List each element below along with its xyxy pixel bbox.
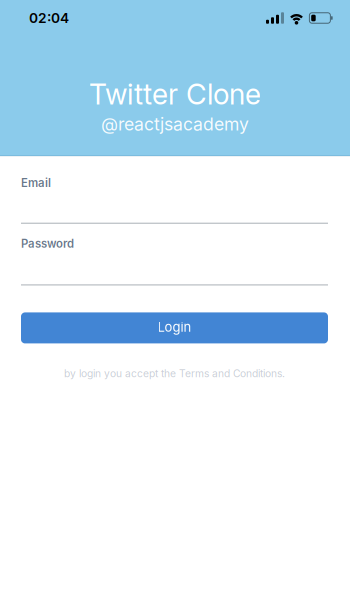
staticText: by login you accept the Terms and Condit… bbox=[64, 367, 285, 380]
staticText: Twitter Clone bbox=[89, 77, 261, 111]
staticText: 02:04 bbox=[29, 10, 69, 26]
staticText: Password bbox=[21, 237, 74, 250]
button[interactable]: Login bbox=[21, 312, 328, 343]
staticText: Email bbox=[21, 176, 51, 190]
staticText: @reactjsacademy bbox=[101, 113, 249, 135]
staticText: Login bbox=[157, 319, 191, 335]
